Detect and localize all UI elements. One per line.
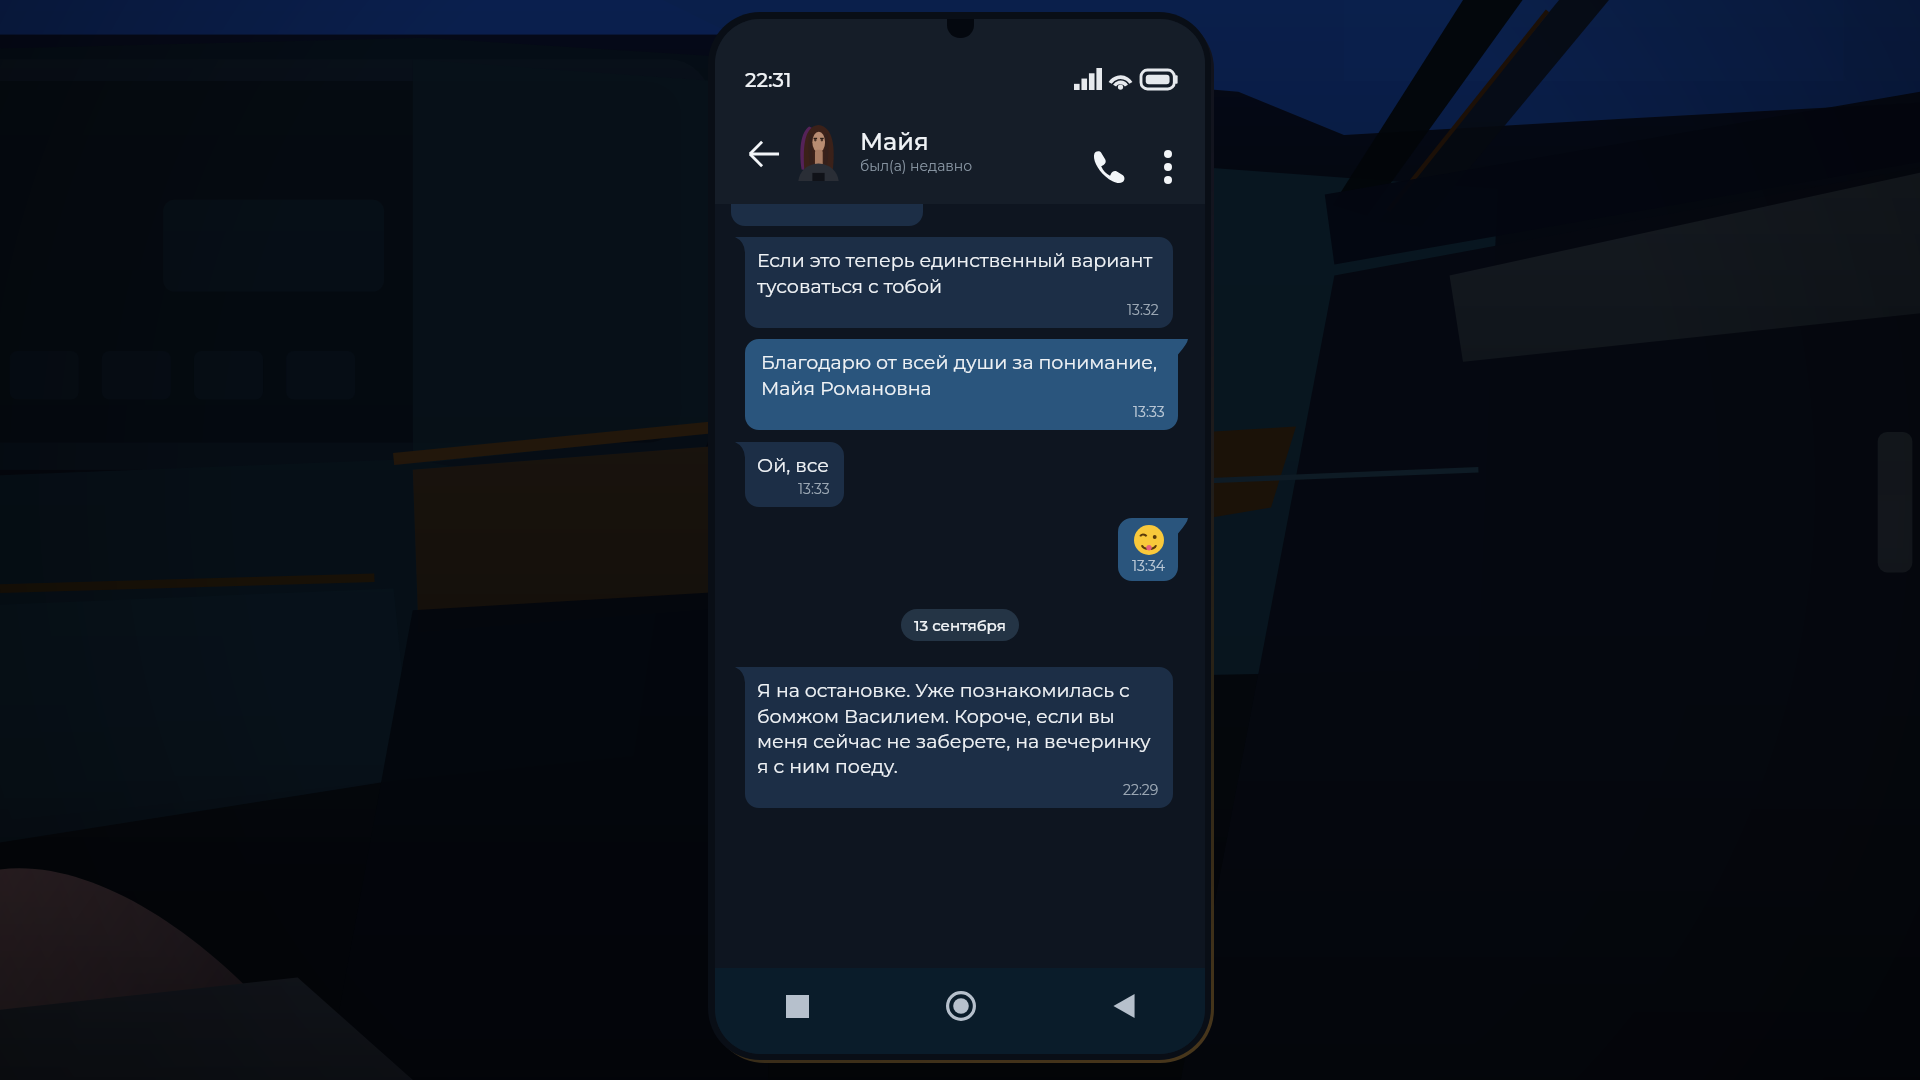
staticText: Ой, все [757,454,830,477]
staticText: 13 сентября [914,616,1006,634]
button[interactable]: Благодарю от всей души за понимание, Май… [745,339,1188,430]
button[interactable]: Back [737,127,791,181]
button[interactable]: Call [1079,138,1137,196]
staticText: Майя [860,127,929,156]
staticText: Благодарю от всей души за понимание, Май… [761,351,1165,400]
staticText: 22:31 [745,68,792,92]
button[interactable]: Home [930,975,992,1037]
button[interactable]: More options [1143,142,1193,192]
staticText: Я на остановке. Уже познакомилась с бомж… [757,679,1159,778]
button[interactable]: Я на остановке. Уже познакомилась с бомж… [735,667,1173,808]
staticText: Если это теперь единственный вариант тус… [757,249,1159,298]
button[interactable]: Back [1093,975,1155,1037]
staticText: 13:33 [1133,403,1165,420]
staticText: 22:29 [1123,781,1159,798]
staticText: был(а) недавно [860,157,973,174]
button[interactable]: Если это теперь единственный вариант тус… [735,237,1173,328]
button[interactable]: Recent apps [766,975,828,1037]
staticText: 13:33 [798,480,830,497]
staticText: 13:34 [1132,557,1166,574]
staticText: 13:32 [1127,301,1159,318]
button[interactable]: Майя [795,111,973,192]
button[interactable]: 13 сентября [901,609,1019,641]
button[interactable]: 13:34 [1118,518,1188,581]
button[interactable]: Ой, все [735,442,844,507]
